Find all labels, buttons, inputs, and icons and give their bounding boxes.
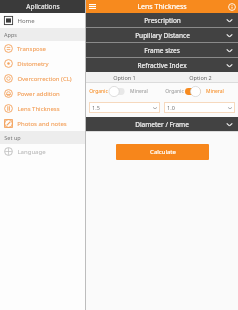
staticText: Option 1 [113, 74, 136, 81]
button[interactable]: Calculate [116, 144, 209, 160]
button[interactable]: Pupillary Distance [86, 28, 238, 42]
staticText: Home [17, 17, 35, 25]
button[interactable]: Language [0, 144, 85, 159]
staticText: Distometry [17, 60, 49, 68]
staticText: Pupillary Distance [135, 31, 190, 40]
button[interactable]: Refractive Index [86, 58, 238, 72]
staticText: 1.0 [167, 104, 175, 111]
button[interactable]: Overcorrection (CL) [0, 71, 85, 86]
staticText: Option 2 [189, 74, 212, 81]
button[interactable]: Frame sizes [86, 43, 238, 57]
staticText: Prescription [144, 16, 181, 25]
staticText: Lens Thickness [137, 2, 187, 12]
staticText: Transpose [17, 45, 46, 53]
staticText: Organic [165, 88, 184, 95]
staticText: Set up [4, 134, 21, 141]
button[interactable]: 1.5 [89, 102, 160, 113]
staticText: Lens Thickness [17, 105, 60, 113]
button[interactable]: 1.0 [164, 102, 235, 113]
staticText: Language [17, 148, 46, 156]
staticText: 1.5 [92, 104, 100, 111]
button[interactable]: Diameter / Frame [86, 117, 238, 131]
staticText: Diameter / Frame [135, 120, 189, 129]
staticText: Power addition [17, 90, 60, 98]
button[interactable]: Home [0, 13, 85, 28]
staticText: Refractive Index [137, 61, 187, 70]
staticText: Mineral [130, 88, 148, 95]
staticText: Organic [89, 88, 108, 95]
button[interactable]: Photos and notes [0, 116, 85, 131]
staticText: Apps [4, 31, 17, 38]
button[interactable]: Organic [86, 83, 162, 100]
staticText: Overcorrection (CL) [17, 75, 72, 83]
button[interactable]: Prescription [86, 13, 238, 27]
button[interactable]: Open navigation menu [86, 0, 99, 13]
button[interactable]: Transpose [0, 41, 85, 56]
staticText: Mineral [206, 88, 224, 95]
button[interactable]: Organic [162, 83, 238, 100]
button[interactable]: Lens Thickness [0, 101, 85, 116]
button[interactable]: Information [225, 0, 238, 13]
button[interactable]: Distometry [0, 56, 85, 71]
staticText: Frame sizes [144, 46, 180, 55]
staticText: Calculate [150, 148, 176, 156]
staticText: Aplications [26, 2, 60, 11]
button[interactable]: Power addition [0, 86, 85, 101]
staticText: Photos and notes [17, 120, 67, 128]
